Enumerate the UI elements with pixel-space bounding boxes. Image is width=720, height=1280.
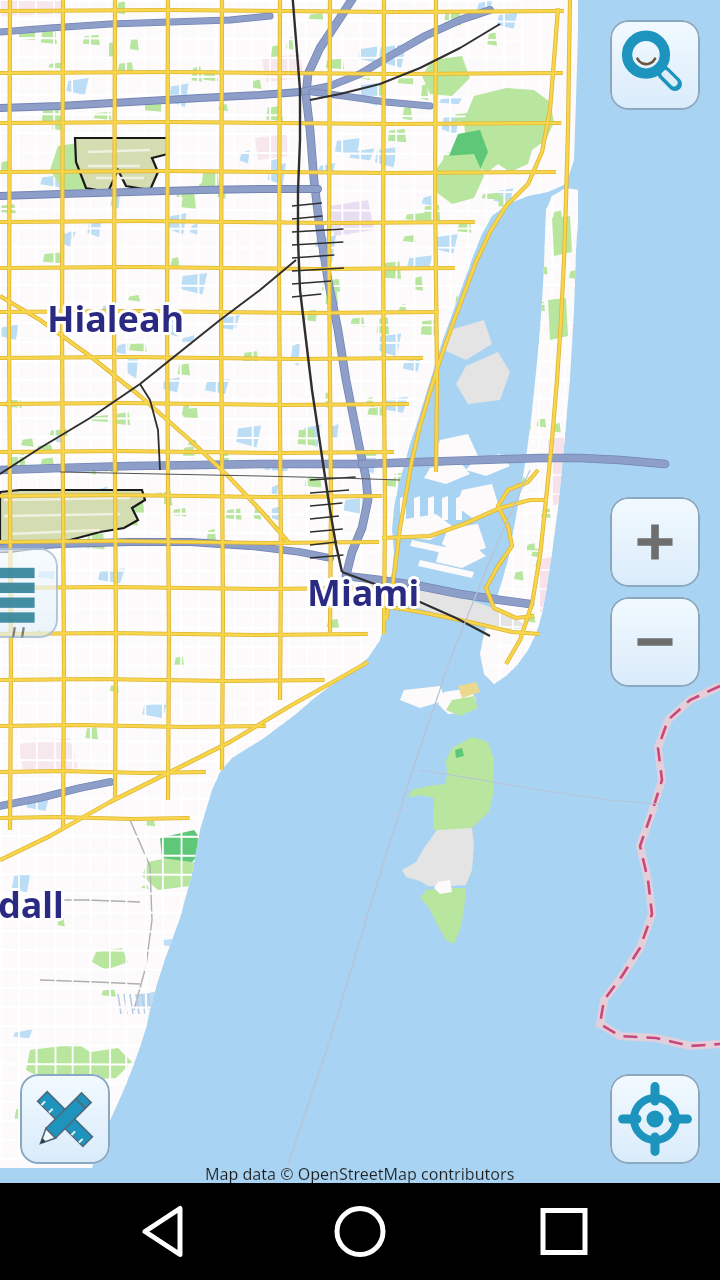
staticText: Miami	[307, 571, 420, 620]
staticText: dall	[0, 880, 64, 929]
staticText: Miami	[305, 568, 418, 617]
staticText: Miami	[309, 566, 422, 615]
staticText: Miami	[305, 566, 418, 615]
staticText: dall	[1, 880, 67, 929]
staticText: Hialeah	[47, 296, 185, 345]
staticText: dall	[0, 882, 66, 931]
staticText: Miami	[307, 570, 420, 619]
staticText: Map data © OpenStreetMap contributors	[205, 1163, 515, 1185]
staticText: dall	[0, 880, 66, 929]
staticText: dall	[0, 882, 62, 931]
staticText: Miami	[310, 568, 423, 617]
staticText: Hialeah	[50, 294, 188, 343]
button[interactable]: Zoom in	[610, 497, 700, 587]
button[interactable]: Plan route	[20, 1074, 110, 1164]
button[interactable]: Search	[610, 20, 700, 110]
staticText: Miami	[305, 570, 418, 619]
staticText: Miami	[307, 566, 420, 615]
staticText: Hialeah	[49, 292, 187, 341]
staticText: dall	[0, 877, 64, 926]
staticText: Hialeah	[44, 294, 182, 343]
staticText: Hialeah	[47, 297, 185, 346]
staticText: Miami	[309, 568, 422, 617]
button[interactable]: Configure map	[0, 548, 58, 638]
button[interactable]: Zoom out	[610, 597, 700, 687]
staticText: Miami	[309, 570, 422, 619]
staticText: Miami	[304, 568, 417, 617]
staticText: dall	[0, 878, 66, 927]
staticText: Hialeah	[49, 296, 187, 345]
staticText: Hialeah	[45, 292, 183, 341]
staticText: dall	[0, 880, 61, 929]
staticText: Hialeah	[49, 294, 187, 343]
staticText: Miami	[307, 565, 420, 614]
staticText: dall	[0, 878, 62, 927]
button[interactable]: My location	[610, 1074, 700, 1164]
staticText: dall	[0, 878, 64, 927]
staticText: Hialeah	[45, 296, 183, 345]
staticText: Hialeah	[47, 294, 185, 343]
staticText: dall	[0, 883, 64, 932]
staticText: Hialeah	[47, 292, 185, 341]
staticText: Hialeah	[45, 294, 183, 343]
staticText: Miami	[307, 568, 420, 617]
staticText: dall	[0, 880, 62, 929]
staticText: dall	[0, 882, 64, 931]
staticText: Hialeah	[47, 291, 185, 340]
